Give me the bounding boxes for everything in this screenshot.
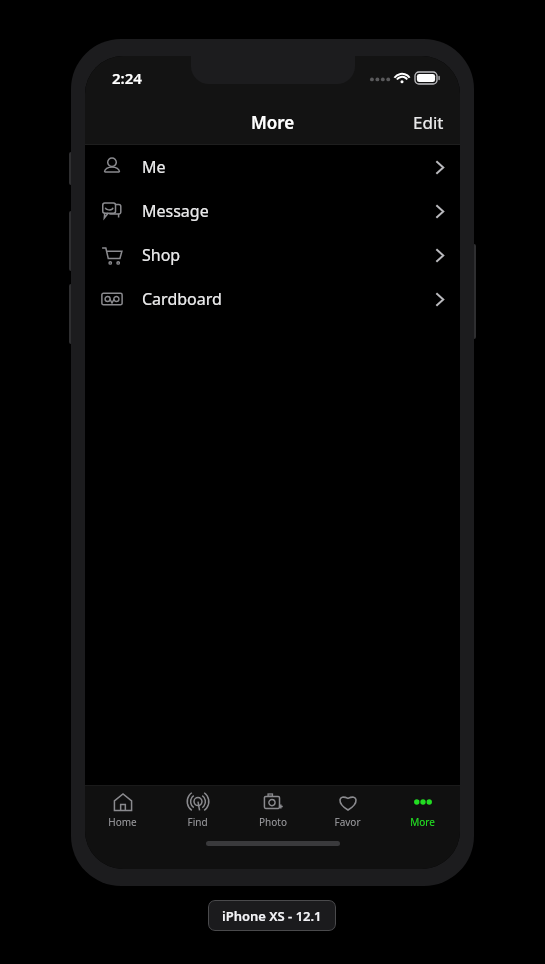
staticText: 2:24 (112, 68, 142, 88)
staticText: More (251, 111, 295, 134)
staticText: Home (108, 815, 137, 829)
button[interactable]: Find (160, 786, 235, 835)
staticText: Find (187, 815, 208, 829)
staticText: Shop (142, 244, 181, 266)
button[interactable]: Cardboard (85, 277, 460, 321)
staticText: More (410, 815, 435, 829)
staticText: Favor (334, 815, 361, 829)
button[interactable]: Edit (397, 103, 460, 142)
button[interactable]: Favor (310, 786, 385, 835)
staticText: Cardboard (142, 288, 222, 310)
staticText: Photo (259, 815, 287, 829)
button[interactable]: More (385, 786, 460, 835)
button[interactable]: Message (85, 189, 460, 233)
staticText: iPhone XS - 12.1 (222, 907, 322, 925)
staticText: Edit (413, 111, 444, 134)
button[interactable]: Shop (85, 233, 460, 277)
staticText: Message (142, 200, 209, 222)
button[interactable]: Me (85, 145, 460, 189)
staticText: Me (142, 156, 166, 178)
button[interactable]: Photo (235, 786, 310, 835)
button[interactable]: Home (85, 786, 160, 835)
